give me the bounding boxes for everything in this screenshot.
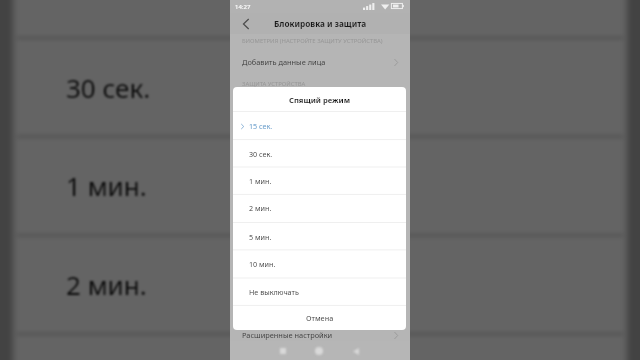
staticText: Не выключать (249, 287, 299, 297)
staticText: 2 мин. (66, 267, 147, 302)
button[interactable]: 2 мин. (233, 194, 406, 222)
button[interactable]: Не выключать (233, 278, 406, 305)
staticText: 14:27 (235, 3, 251, 11)
button[interactable]: 5 мин. (233, 223, 406, 250)
staticText: 30 сек. (66, 70, 151, 105)
button[interactable]: Home (310, 342, 328, 360)
staticText: Блокировка и защита (274, 18, 367, 29)
button[interactable]: Back (347, 342, 365, 360)
staticText: 1 мин. (249, 176, 272, 186)
button[interactable]: Отмена (233, 305, 406, 330)
staticText: 1 мин. (66, 168, 147, 203)
staticText: Отмена (306, 313, 334, 323)
button[interactable]: Back (237, 15, 255, 33)
staticText: Спящий режим (289, 95, 351, 105)
staticText: 15 сек. (249, 121, 273, 131)
button[interactable]: Recent apps (274, 342, 292, 360)
staticText: ЗАЩИТА УСТРОЙСТВА (242, 80, 306, 88)
button[interactable]: 15 сек. (233, 112, 406, 140)
button[interactable]: 30 сек. (233, 140, 406, 167)
staticText: 30 сек. (249, 149, 273, 159)
staticText: 5 мин. (249, 232, 272, 242)
button[interactable]: Добавить данные лица (230, 53, 410, 71)
button[interactable]: Расширенные настройки (230, 326, 410, 344)
staticText: Добавить данные лица (242, 57, 326, 67)
button[interactable]: 10 мин. (233, 250, 406, 278)
staticText: БИОМЕТРИЯ (НАСТРОЙТЕ ЗАЩИТУ УСТРОЙСТВА) (242, 37, 383, 45)
staticText: 10 мин. (249, 259, 276, 269)
staticText: 2 мин. (249, 203, 272, 213)
button[interactable]: 1 мин. (233, 167, 406, 194)
staticText: Расширенные настройки (242, 330, 333, 340)
